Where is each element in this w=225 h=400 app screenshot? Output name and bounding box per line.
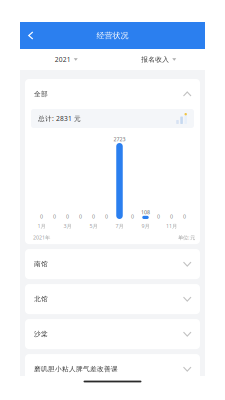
button[interactable]: 报名收入 (112, 49, 205, 70)
staticText: 11月 (166, 222, 177, 230)
button[interactable]: 南馆 (25, 249, 200, 279)
staticText: 0 (79, 213, 82, 220)
staticText: 总计: 2831 元 (38, 114, 81, 123)
staticText: 9月 (141, 222, 149, 230)
staticText: 北馆 (34, 295, 48, 303)
staticText: 0 (40, 213, 43, 220)
button[interactable]: 全部 (25, 79, 200, 109)
button[interactable]: 2021 (20, 49, 112, 70)
staticText: 报名收入 (141, 55, 169, 64)
staticText: 经营状况 (96, 31, 128, 40)
staticText: 108 (141, 209, 150, 216)
staticText: 1月 (37, 222, 45, 230)
staticText: 磨叽胆小粘人脾气差改善课 (34, 365, 118, 373)
staticText: 0 (157, 213, 160, 220)
staticText: 0 (53, 213, 56, 220)
staticText: 2021年 (33, 234, 50, 241)
button[interactable]: 返回 (20, 22, 42, 49)
staticText: 7月 (115, 222, 123, 230)
staticText: 南馆 (34, 260, 48, 268)
staticText: 0 (183, 213, 186, 220)
button[interactable]: 磨叽胆小粘人脾气差改善课 (25, 354, 200, 384)
staticText: 0 (92, 213, 95, 220)
staticText: 0 (66, 213, 69, 220)
staticText: 单位: 元 (178, 234, 195, 241)
button[interactable]: 北馆 (25, 284, 200, 314)
staticText: 沙棠 (34, 330, 48, 338)
staticText: 3月 (63, 222, 71, 230)
staticText: 0 (170, 213, 173, 220)
staticText: 全部 (34, 90, 48, 98)
staticText: 2021 (55, 55, 71, 64)
button[interactable]: 沙棠 (25, 319, 200, 349)
staticText: 0 (131, 213, 134, 220)
staticText: 2723 (113, 136, 125, 143)
staticText: 0 (105, 213, 108, 220)
staticText: 5月 (89, 222, 97, 230)
